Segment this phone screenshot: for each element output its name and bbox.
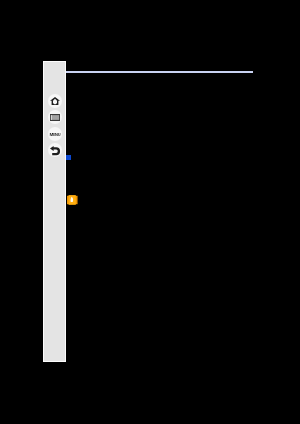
button[interactable]: Back [48,143,62,157]
button[interactable]: Menu [48,127,62,141]
button[interactable]: App shortcut [67,195,78,205]
button[interactable]: Home [48,94,62,108]
button[interactable]: Recent apps [48,110,62,124]
staticText: MENU [49,132,61,137]
